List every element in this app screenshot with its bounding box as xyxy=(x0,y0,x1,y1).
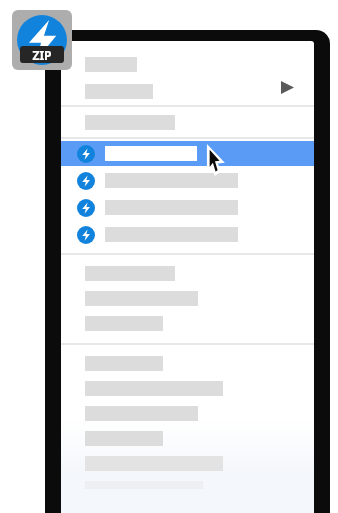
other: Archive item xyxy=(77,226,95,244)
button[interactable]: Archive item xyxy=(61,141,314,166)
button[interactable]: ZIP archive xyxy=(12,10,72,70)
other: Archive item xyxy=(77,172,95,190)
button[interactable]: Play xyxy=(276,76,298,98)
button[interactable]: Archive item xyxy=(61,195,314,220)
other: Archive item xyxy=(77,199,95,217)
staticText: ZIP xyxy=(32,47,52,63)
button[interactable]: Archive item xyxy=(61,168,314,193)
other: Archive item xyxy=(77,145,95,163)
button[interactable]: Archive item xyxy=(61,222,314,247)
